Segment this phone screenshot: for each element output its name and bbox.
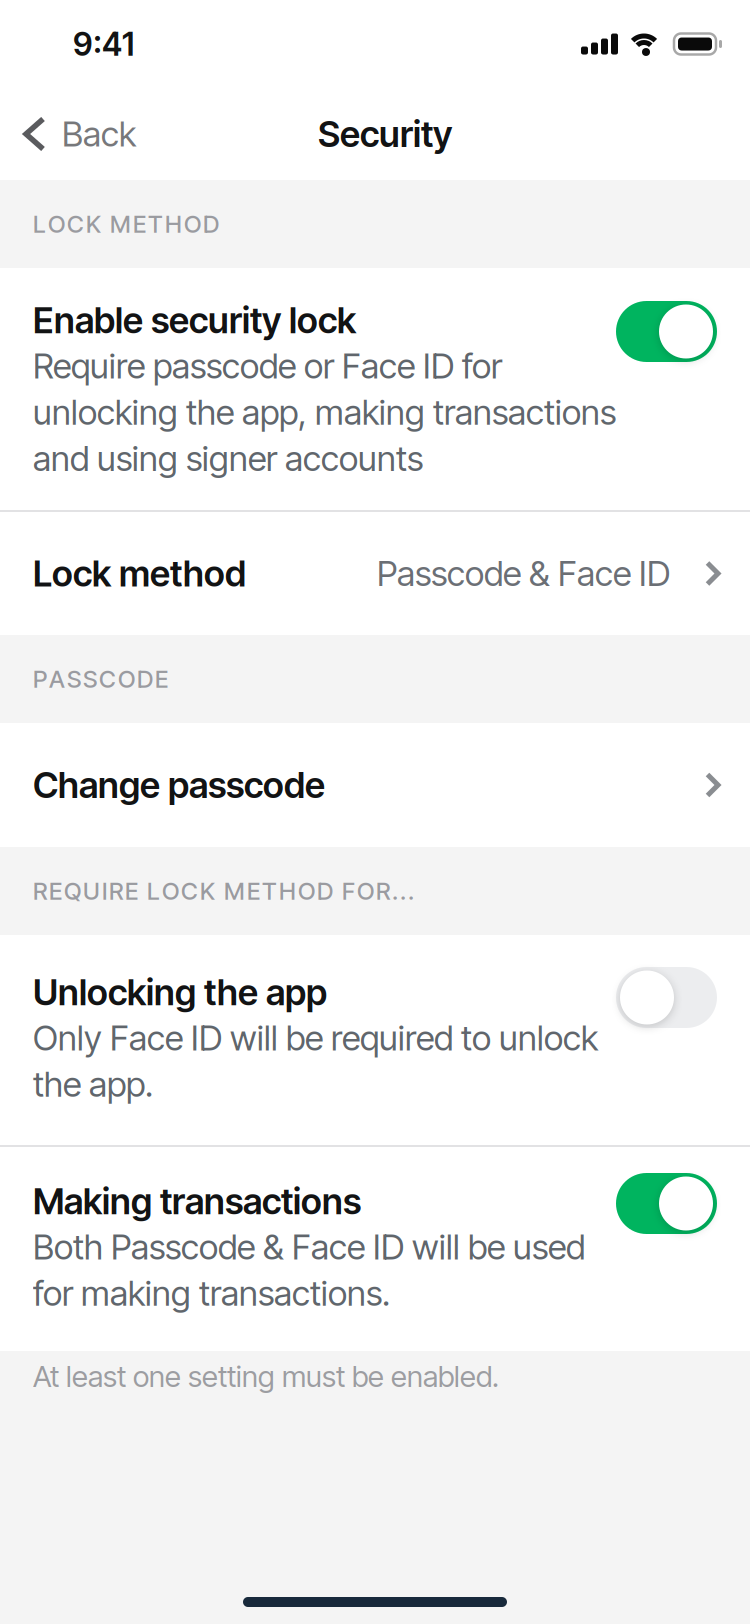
staticText: Lock method (33, 552, 246, 595)
button[interactable]: Lock method (0, 512, 750, 635)
staticText: 9:41 (73, 25, 134, 63)
staticText: R E Q U I R E L O C K M E T H O D F O R … (33, 877, 414, 905)
staticText: Unlocking the app (33, 971, 327, 1013)
staticText: Making transactions (33, 1180, 361, 1222)
button[interactable]: Unlocking the app (616, 967, 717, 1028)
button[interactable]: Change passcode (0, 723, 750, 847)
staticText: Back (62, 114, 136, 154)
staticText: P A S S C O D E (33, 665, 168, 693)
staticText: At least one setting must be enabled. (33, 1359, 499, 1394)
staticText: Require passcode or Face ID for unlockin… (33, 345, 616, 479)
button[interactable]: Making transactions (616, 1173, 717, 1234)
button[interactable]: Back (0, 114, 136, 154)
staticText: Passcode & Face ID (377, 553, 670, 594)
staticText: L O C K M E T H O D (33, 210, 219, 238)
staticText: Enable security lock (33, 299, 356, 341)
staticText: Security (318, 113, 452, 155)
staticText: Both Passcode & Face ID will be used for… (33, 1226, 585, 1314)
button[interactable]: Enable security lock (616, 301, 717, 362)
staticText: Change passcode (33, 764, 325, 806)
staticText: Only Face ID will be required to unlock … (33, 1017, 598, 1105)
